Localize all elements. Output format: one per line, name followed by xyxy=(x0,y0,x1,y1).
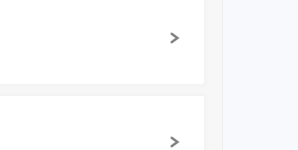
button[interactable]: Open settings item xyxy=(0,96,204,150)
button[interactable]: Open settings item xyxy=(0,0,204,84)
